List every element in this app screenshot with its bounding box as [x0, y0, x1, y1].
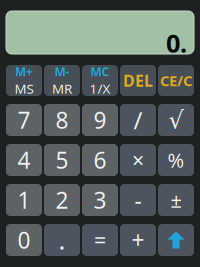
staticText: 7 — [17, 105, 30, 135]
button[interactable]: CE/C — [158, 65, 194, 96]
button[interactable]: + — [120, 224, 156, 256]
button[interactable]: √ — [158, 104, 194, 136]
staticText: 4 — [17, 145, 30, 175]
staticText: MC — [90, 64, 109, 80]
staticText: 8 — [55, 105, 68, 135]
button[interactable]: - — [120, 184, 156, 216]
staticText: 9 — [93, 105, 106, 135]
staticText: 1 — [17, 185, 30, 215]
button[interactable]: M+ — [6, 65, 42, 96]
button[interactable]: 0 — [6, 224, 42, 256]
button[interactable]: . — [44, 224, 80, 256]
button[interactable]: Enter — [158, 224, 194, 256]
staticText: 5 — [55, 145, 68, 175]
button[interactable]: 4 — [6, 144, 42, 176]
staticText: × — [132, 146, 144, 174]
button[interactable]: × — [120, 144, 156, 176]
staticText: MR — [52, 80, 72, 97]
staticText: 1/X — [89, 80, 110, 97]
staticText: M+ — [15, 64, 33, 80]
button[interactable]: 7 — [6, 104, 42, 136]
button[interactable]: 9 — [82, 104, 118, 136]
staticText: % — [167, 147, 184, 173]
staticText: 6 — [93, 145, 106, 175]
staticText: 3 — [93, 185, 106, 215]
staticText: CE/C — [160, 71, 192, 90]
staticText: + — [131, 225, 144, 255]
button[interactable]: DEL — [120, 65, 156, 96]
staticText: MS — [14, 80, 33, 97]
button[interactable]: M- — [44, 65, 80, 96]
button[interactable]: 3 — [82, 184, 118, 216]
staticText: 0 — [17, 225, 30, 255]
button[interactable]: 6 — [82, 144, 118, 176]
staticText: ± — [170, 187, 181, 213]
staticText: = — [94, 226, 106, 254]
staticText: M- — [54, 64, 69, 80]
staticText: √ — [168, 106, 183, 134]
staticText: - — [134, 185, 141, 215]
staticText: 0. — [166, 26, 187, 60]
button[interactable]: ± — [158, 184, 194, 216]
button[interactable]: 1 — [6, 184, 42, 216]
button[interactable]: 8 — [44, 104, 80, 136]
button[interactable]: / — [120, 104, 156, 136]
staticText: / — [133, 104, 142, 136]
button[interactable]: 2 — [44, 184, 80, 216]
staticText: 2 — [55, 185, 68, 215]
button[interactable]: 5 — [44, 144, 80, 176]
button[interactable]: = — [82, 224, 118, 256]
staticText: . — [58, 223, 65, 257]
staticText: DEL — [123, 70, 153, 91]
button[interactable]: MC — [82, 65, 118, 96]
button[interactable]: % — [158, 144, 194, 176]
